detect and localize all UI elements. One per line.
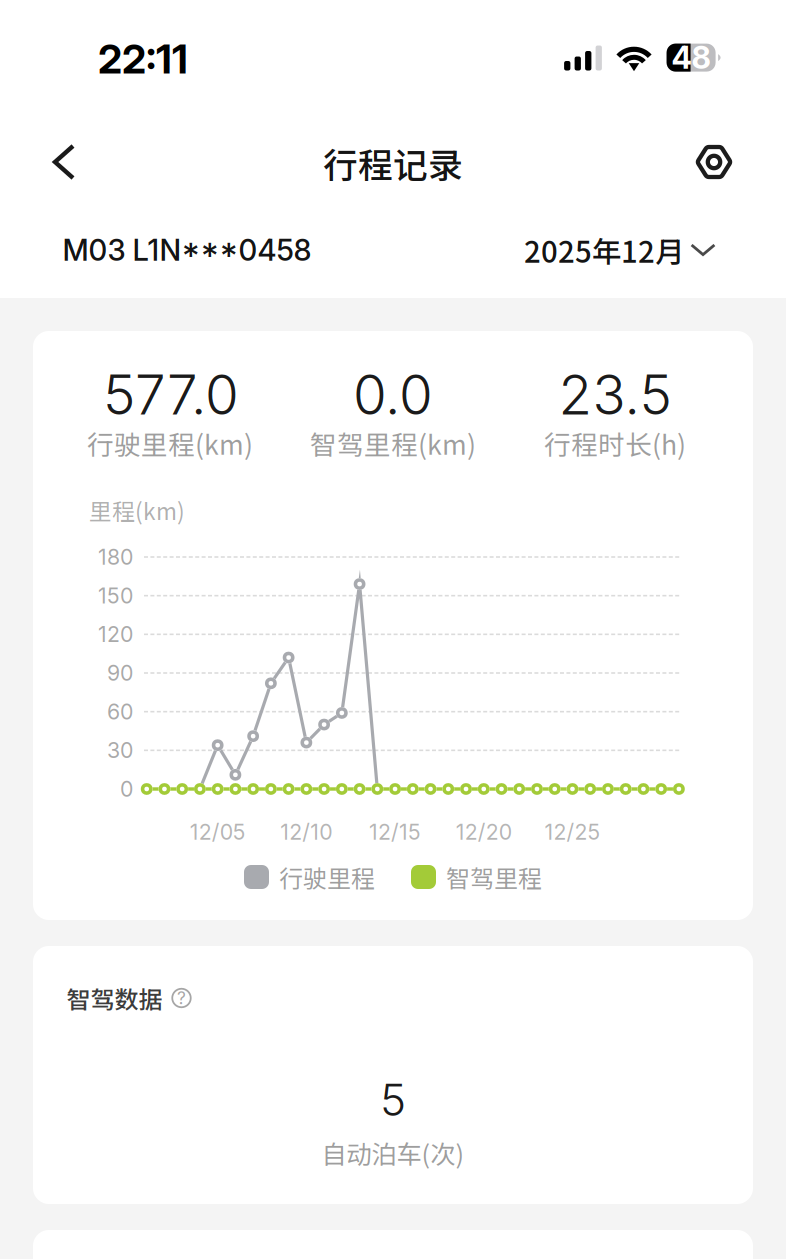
staticText: M03 L1N***0458 (62, 232, 311, 268)
staticText: 0.0 (353, 361, 433, 428)
staticText: 23.5 (558, 361, 671, 428)
staticText: 12/15 (369, 819, 421, 845)
staticText: 12/05 (190, 819, 246, 845)
staticText: ? (177, 987, 186, 1008)
staticText: 48 (672, 39, 711, 76)
staticText: 行程记录 (323, 138, 463, 188)
staticText: 里程(km) (89, 494, 185, 526)
staticText: 12/20 (456, 819, 512, 845)
staticText: 577.0 (103, 361, 239, 428)
staticText: 150 (98, 583, 133, 609)
staticText: 行程时长(h) (544, 424, 686, 462)
staticText: 22:11 (98, 35, 188, 83)
staticText: 30 (107, 737, 133, 763)
staticText: 2025年12月 (524, 229, 684, 271)
staticText: 行驶里程 (279, 860, 375, 894)
staticText: 5 (380, 1073, 406, 1126)
button[interactable]: 2025年12月 (514, 217, 726, 283)
staticText: 60 (107, 699, 133, 725)
staticText: 智驾数据 (66, 981, 162, 1015)
staticText: 120 (98, 621, 133, 647)
staticText: 180 (98, 544, 133, 570)
staticText: 90 (107, 660, 133, 686)
staticText: 智驾里程(km) (310, 424, 476, 462)
staticText: 12/25 (544, 819, 600, 845)
button[interactable]: Settings (682, 130, 746, 194)
staticText: 行驶里程(km) (87, 424, 253, 462)
staticText: 自动泊车(次) (321, 1134, 464, 1171)
staticText: 12/10 (280, 819, 332, 845)
staticText: 0 (120, 776, 133, 802)
button[interactable]: Back (32, 130, 96, 194)
staticText: 智驾里程 (446, 860, 542, 894)
